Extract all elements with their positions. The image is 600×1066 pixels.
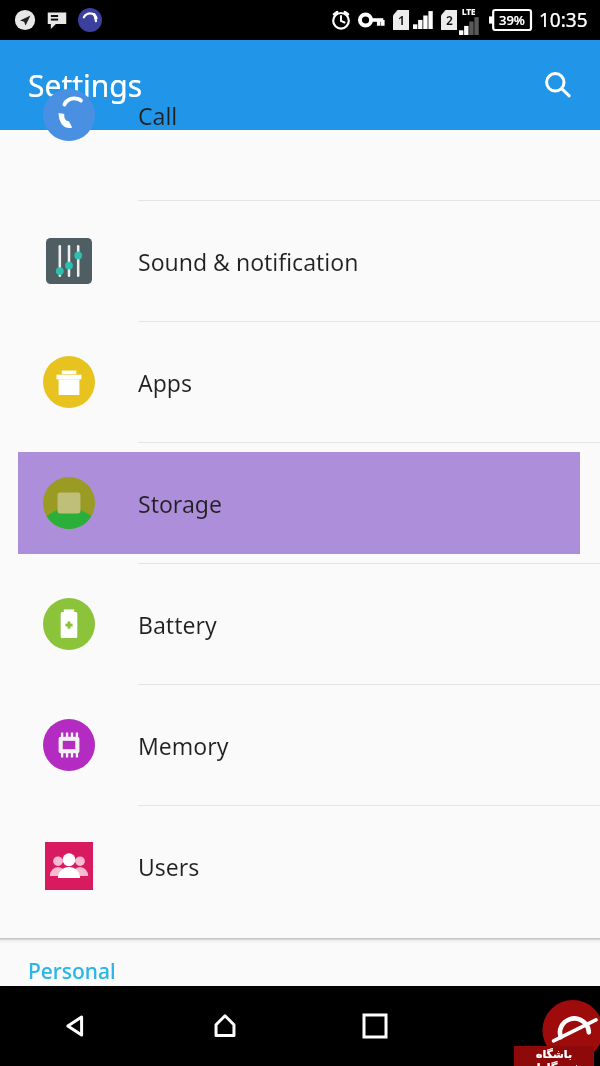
staticText: LTE [462,6,476,17]
button[interactable]: Home [150,986,300,1066]
button[interactable]: Storage [0,443,600,563]
staticText: Call [138,100,178,131]
staticText: 39% [499,11,525,29]
staticText: Settings [28,65,143,106]
staticText: Personal [28,957,116,986]
staticText: Memory [138,730,229,761]
staticText: 2 [446,12,453,28]
staticText: باشگاه خبرنگاران [514,1046,594,1066]
staticText: Apps [138,367,193,398]
button[interactable]: Memory [0,685,600,805]
staticText: Storage [138,488,222,519]
button[interactable]: Battery [0,564,600,684]
button[interactable]: Sound & notification [0,201,600,321]
button[interactable]: Call [0,130,600,200]
button[interactable]: Search [534,61,582,109]
staticText: Users [138,851,200,882]
button[interactable]: Users [0,806,600,926]
button[interactable]: Recents [300,986,450,1066]
staticText: 10:35 [539,7,588,33]
staticText: 1 [398,12,405,28]
staticText: Sound & notification [138,246,359,277]
staticText: Battery [138,609,217,640]
button[interactable]: Back [0,986,150,1066]
button[interactable]: Apps [0,322,600,442]
